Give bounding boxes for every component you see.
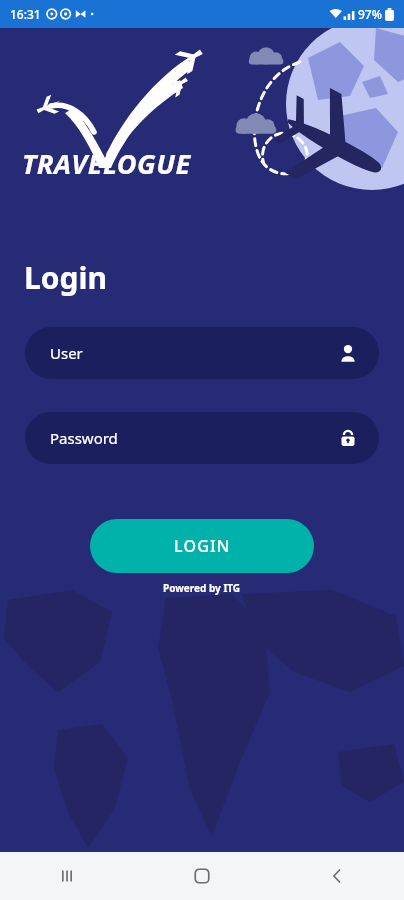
staticText: User [50, 343, 83, 363]
button[interactable]: User [25, 327, 379, 379]
button[interactable]: Home [134, 852, 269, 900]
button[interactable]: Password [25, 412, 379, 464]
button[interactable]: Back [269, 852, 404, 900]
button[interactable]: LOGIN [90, 519, 314, 573]
staticText: Login [24, 257, 107, 298]
staticText: 97% [358, 6, 382, 22]
staticText: 16:31 [10, 6, 41, 22]
staticText: Password [50, 428, 118, 448]
button[interactable]: Recent apps [0, 852, 134, 900]
staticText: Powered by ITG [163, 581, 241, 595]
staticText: TRAVELOGUE [22, 145, 191, 182]
staticText: LOGIN [174, 535, 231, 557]
